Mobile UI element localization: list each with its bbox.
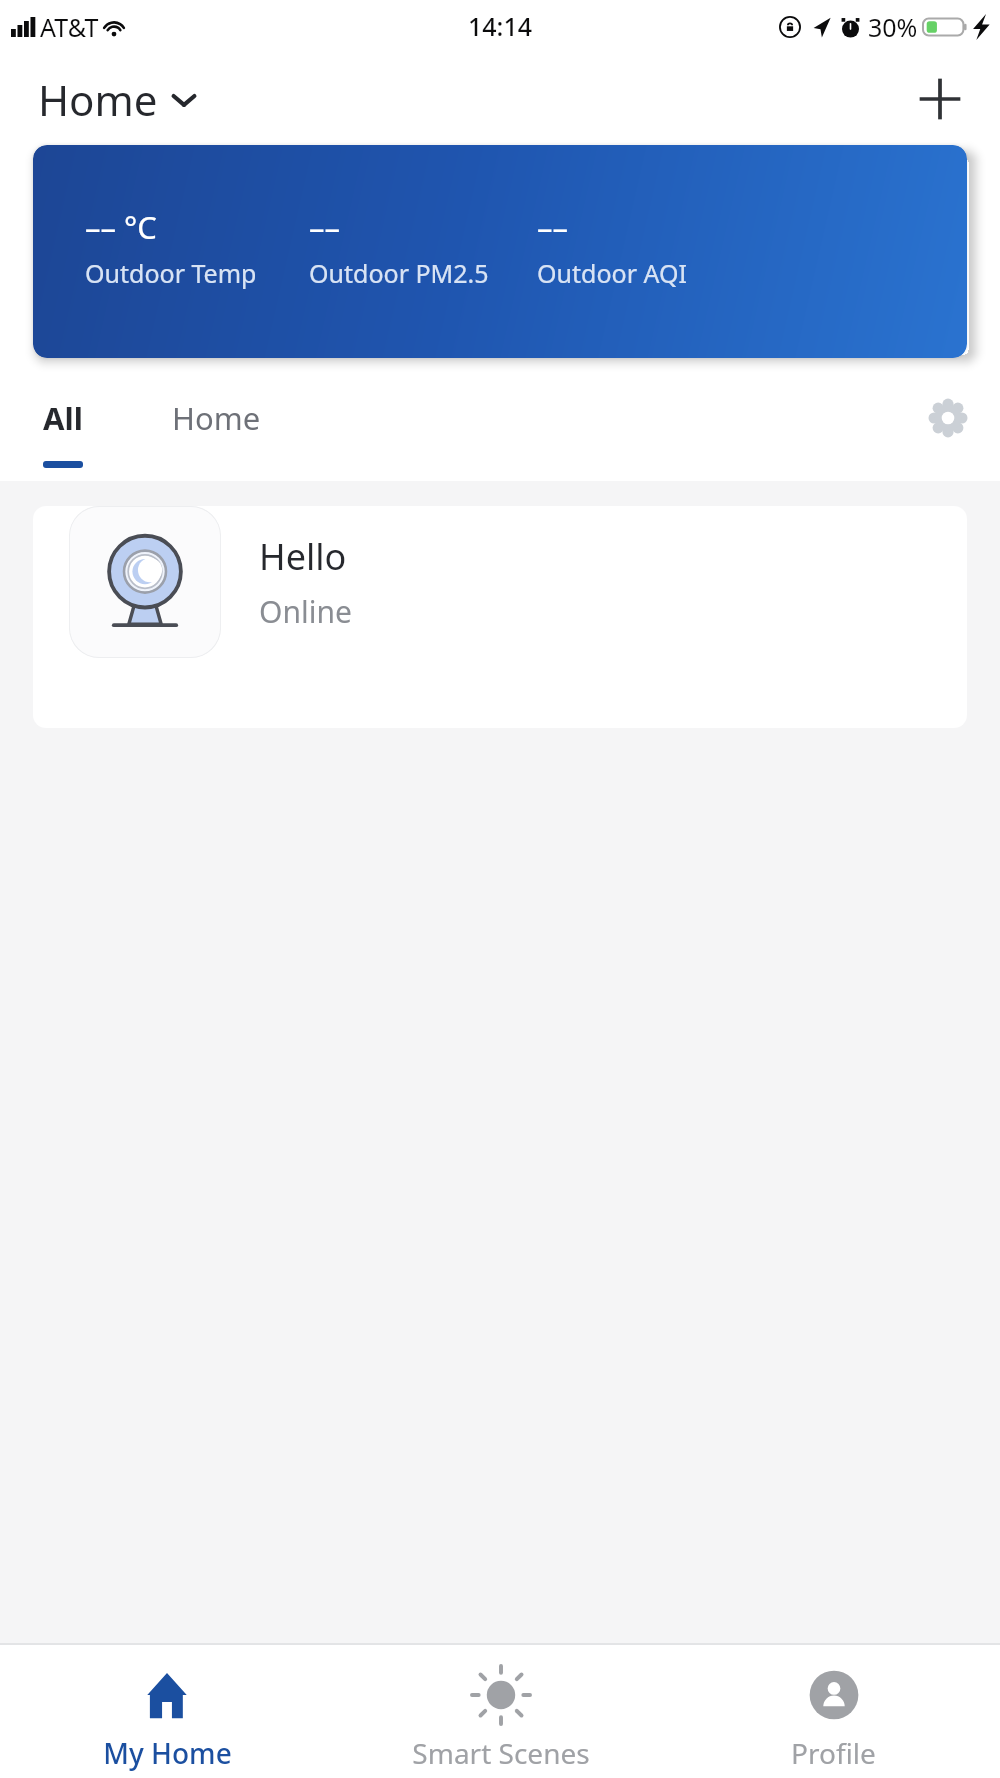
staticText: Outdoor Temp [85, 256, 257, 290]
staticText: 14:14 [468, 9, 533, 43]
staticText: Outdoor AQI [537, 256, 687, 290]
staticText: Hello [259, 532, 347, 581]
staticText: AT&T [40, 10, 99, 44]
button[interactable]: Settings [916, 386, 980, 450]
button[interactable]: All [28, 397, 98, 468]
button[interactable]: Add device [904, 63, 976, 135]
staticText: Smart Scenes [412, 1734, 590, 1772]
staticText: Outdoor PM2.5 [309, 256, 489, 290]
staticText: –– °C [85, 206, 157, 248]
staticText: –– [309, 206, 340, 248]
button[interactable]: Home [162, 397, 271, 439]
staticText: –– [537, 206, 568, 248]
staticText: All [43, 397, 83, 439]
button[interactable]: Profile [667, 1652, 1000, 1772]
staticText: 30% [868, 10, 918, 44]
staticText: Home [38, 71, 158, 128]
staticText: My Home [103, 1734, 232, 1772]
button[interactable]: My Home [0, 1652, 334, 1772]
staticText: Online [259, 591, 352, 632]
staticText: Profile [791, 1734, 876, 1772]
button[interactable]: –– °C [33, 145, 967, 358]
staticText: Home [172, 397, 261, 439]
button[interactable]: Hello [33, 506, 967, 728]
button[interactable]: Smart Scenes [334, 1652, 667, 1772]
button[interactable]: Home [34, 63, 201, 136]
